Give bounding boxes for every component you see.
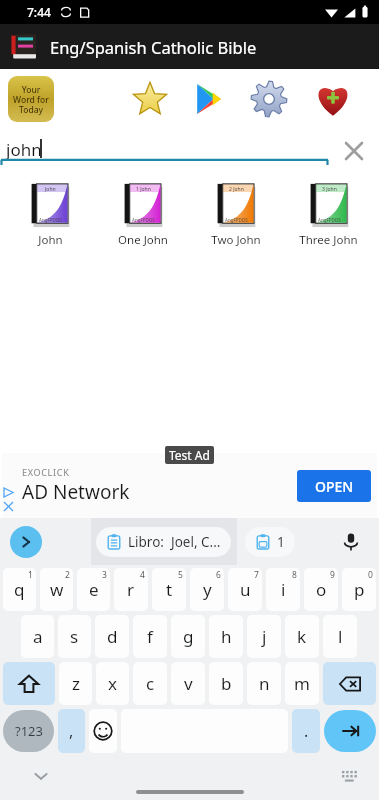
staticText: 2 John <box>229 186 244 193</box>
button[interactable]: Enter <box>324 710 376 752</box>
staticText: a <box>33 625 43 648</box>
staticText: f <box>147 625 153 648</box>
button[interactable]: Period <box>292 709 320 753</box>
staticText: 4 <box>140 569 145 581</box>
staticText: John <box>38 232 63 248</box>
staticText: Three John <box>299 232 358 248</box>
staticText: 7:44 <box>27 4 51 20</box>
button[interactable]: t <box>152 568 186 611</box>
staticText: John <box>45 186 56 193</box>
button[interactable]: y <box>190 568 224 611</box>
staticText: 1 <box>277 533 285 551</box>
button[interactable]: John <box>4 181 96 248</box>
button[interactable]: b <box>209 662 243 705</box>
staticText: k <box>297 625 307 648</box>
button[interactable]: x <box>96 662 129 705</box>
button[interactable]: a <box>21 615 54 658</box>
button[interactable]: j <box>247 615 281 658</box>
button[interactable]: g <box>171 615 205 658</box>
button[interactable]: i <box>266 568 300 611</box>
button[interactable]: w <box>40 568 73 611</box>
staticText: Eng/Spanish Catholic Bible <box>50 36 257 58</box>
button[interactable]: z <box>59 662 92 705</box>
staticText: , <box>69 720 74 742</box>
button[interactable]: Voice input <box>337 528 365 556</box>
button[interactable]: r <box>114 568 148 611</box>
staticText: g <box>183 625 194 648</box>
staticText: ?123 <box>15 722 43 740</box>
button[interactable]: Backspace <box>323 662 376 705</box>
button[interactable]: 2 John <box>189 181 282 248</box>
button[interactable]: Shift <box>3 662 55 705</box>
button[interactable]: Play Store <box>186 77 230 121</box>
staticText: 3 John <box>322 186 337 193</box>
staticText: e <box>89 578 99 601</box>
staticText: x <box>108 672 117 695</box>
button[interactable]: v <box>171 662 205 705</box>
button[interactable]: OPEN <box>297 470 371 502</box>
button[interactable]: h <box>209 615 243 658</box>
button[interactable]: q <box>3 568 36 611</box>
button[interactable]: p <box>342 568 376 611</box>
staticText: u <box>240 578 251 601</box>
staticText: n <box>259 672 270 695</box>
staticText: 0 <box>368 569 373 581</box>
button[interactable]: Libro: Joel, C... <box>106 527 221 557</box>
button[interactable]: 3 John <box>282 181 375 248</box>
staticText: EXOCLICK <box>22 466 70 478</box>
button[interactable]: e <box>77 568 110 611</box>
staticText: s <box>70 625 79 648</box>
staticText: AD Network <box>22 479 130 505</box>
staticText: 7 <box>254 569 259 581</box>
button[interactable]: Symbols <box>3 710 54 752</box>
staticText: AngFPDOS <box>132 217 155 223</box>
button[interactable]: Switch keyboard <box>339 765 361 787</box>
button[interactable]: u <box>228 568 262 611</box>
button[interactable]: n <box>247 662 281 705</box>
button[interactable]: d <box>95 615 129 658</box>
staticText: p <box>354 578 365 601</box>
staticText: Two John <box>211 232 261 248</box>
staticText: l <box>338 625 343 648</box>
staticText: y <box>203 578 212 601</box>
button[interactable]: Expand suggestions <box>10 526 42 558</box>
staticText: v <box>184 672 193 695</box>
staticText: Your Word for Today <box>13 84 49 115</box>
button[interactable]: Comma <box>58 709 85 753</box>
button[interactable]: Your Word for Today <box>8 76 54 122</box>
staticText: . <box>304 720 309 742</box>
button[interactable]: l <box>323 615 357 658</box>
button[interactable]: Add to favorites <box>310 76 356 122</box>
staticText: t <box>166 578 173 601</box>
staticText: OPEN <box>315 477 354 496</box>
staticText: z <box>72 672 80 695</box>
staticText: Test Ad <box>169 447 210 463</box>
staticText: i <box>281 578 286 601</box>
staticText: 1 <box>28 569 33 581</box>
button[interactable]: 1 John <box>96 181 189 248</box>
button[interactable]: f <box>133 615 167 658</box>
button[interactable]: Settings <box>247 77 291 121</box>
button[interactable]: Hide keyboard <box>30 765 52 787</box>
button[interactable]: o <box>304 568 338 611</box>
staticText: 1 John <box>136 186 151 193</box>
button[interactable]: k <box>285 615 319 658</box>
staticText: 2 <box>65 569 70 581</box>
staticText: 6 <box>216 569 221 581</box>
staticText: w <box>50 578 64 601</box>
staticText: b <box>221 672 232 695</box>
button[interactable]: Emoji <box>89 709 117 753</box>
staticText: d <box>107 625 118 648</box>
button[interactable]: s <box>58 615 91 658</box>
button[interactable]: Favorites <box>128 77 172 121</box>
button[interactable]: m <box>285 662 319 705</box>
staticText: AngFPDOS <box>225 217 248 223</box>
button[interactable]: Clear search <box>337 134 371 168</box>
staticText: h <box>221 625 232 648</box>
button[interactable]: 1 <box>255 527 285 557</box>
button[interactable]: c <box>133 662 167 705</box>
staticText: o <box>316 578 327 601</box>
staticText: 8 <box>292 569 297 581</box>
staticText: j <box>262 625 267 648</box>
